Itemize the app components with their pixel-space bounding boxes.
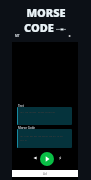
button[interactable]: .... . .-.. .-.. --- .-- --- .-. .-.. -.…: [17, 129, 72, 148]
button[interactable]: Flashlight: [58, 156, 62, 160]
staticText: .... . .-.. .-.. --- .-- --- .-. .-.. -.…: [20, 134, 63, 142]
staticText: Ad: [43, 172, 47, 176]
staticText: Text: [18, 104, 24, 108]
button[interactable]: Previous: [33, 156, 37, 160]
staticText: Morse Code: [18, 126, 35, 130]
staticText: MT: [15, 34, 20, 38]
button[interactable]: ..- . .-.. .-.. --- .-- --- .-. .-.. -..: [17, 107, 72, 125]
button[interactable]: Ad: [12, 170, 78, 177]
staticText: CODE: [24, 20, 54, 35]
staticText: MORSE: [26, 5, 66, 20]
button[interactable]: Play: [40, 152, 54, 166]
staticText: ..- . .-.. .-.. --- .-- --- .-. .-.. -..: [20, 110, 55, 114]
button[interactable]: Menu: [68, 34, 72, 38]
